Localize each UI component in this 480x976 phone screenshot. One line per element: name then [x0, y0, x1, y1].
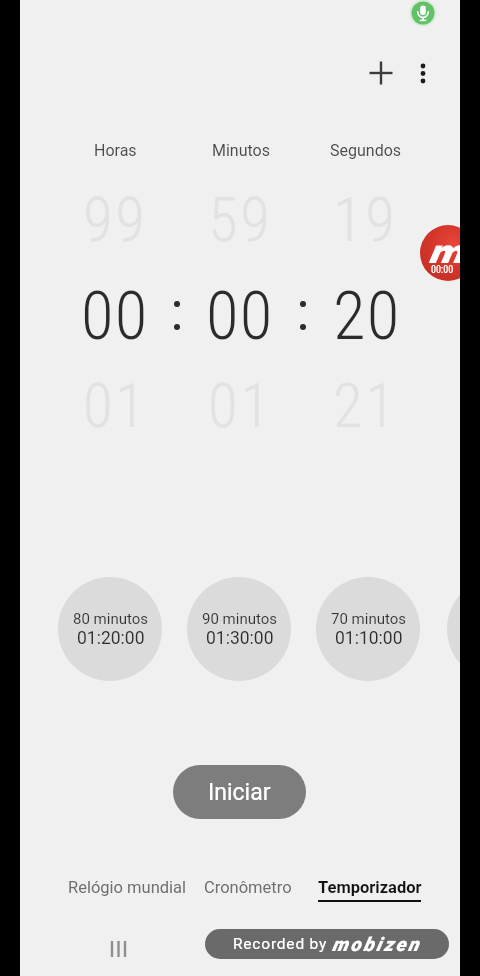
button[interactable]: Iniciar [173, 765, 306, 819]
staticText: m [427, 229, 463, 263]
button[interactable] [367, 59, 395, 87]
button[interactable]: 60 minutos [447, 577, 480, 681]
staticText: 90 minutos [202, 610, 277, 628]
staticText: 01 [83, 370, 148, 441]
staticText: 01:10:00 [335, 628, 403, 649]
staticText: 20 [333, 277, 401, 356]
staticText: Temporizador [318, 878, 422, 897]
staticText: Relógio mundial [68, 878, 187, 897]
button[interactable]: Temporizador [305, 872, 435, 902]
staticText: Minutos [212, 141, 270, 160]
staticText: 19 [333, 184, 398, 255]
staticText: 59 [208, 184, 273, 255]
staticText: 70 minutos [331, 610, 406, 628]
staticText: 80 minutos [73, 610, 148, 628]
staticText: 00 [206, 277, 274, 356]
staticText: Segundos [330, 141, 402, 160]
staticText: 21 [333, 370, 398, 441]
button[interactable]: 80 minutos [58, 577, 162, 681]
button[interactable] [411, 59, 435, 87]
staticText: Recorded by [233, 935, 332, 953]
button[interactable]: Relógio mundial [47, 872, 207, 902]
button[interactable]: 70 minutos [316, 577, 420, 681]
button[interactable]: Cronômetro [183, 872, 313, 902]
staticText: Horas [94, 141, 137, 160]
staticText: 00:00 [431, 264, 454, 276]
staticText: mobizen [332, 933, 421, 955]
staticText: 00 [81, 277, 149, 356]
staticText: Cronômetro [204, 878, 292, 897]
staticText: 99 [83, 184, 148, 255]
staticText: 01:30:00 [206, 628, 274, 649]
staticText: 01 [208, 370, 273, 441]
staticText: 01:20:00 [77, 628, 145, 649]
button[interactable]: m [420, 225, 476, 281]
button[interactable]: 90 minutos [187, 577, 291, 681]
staticText: Iniciar [208, 779, 271, 806]
